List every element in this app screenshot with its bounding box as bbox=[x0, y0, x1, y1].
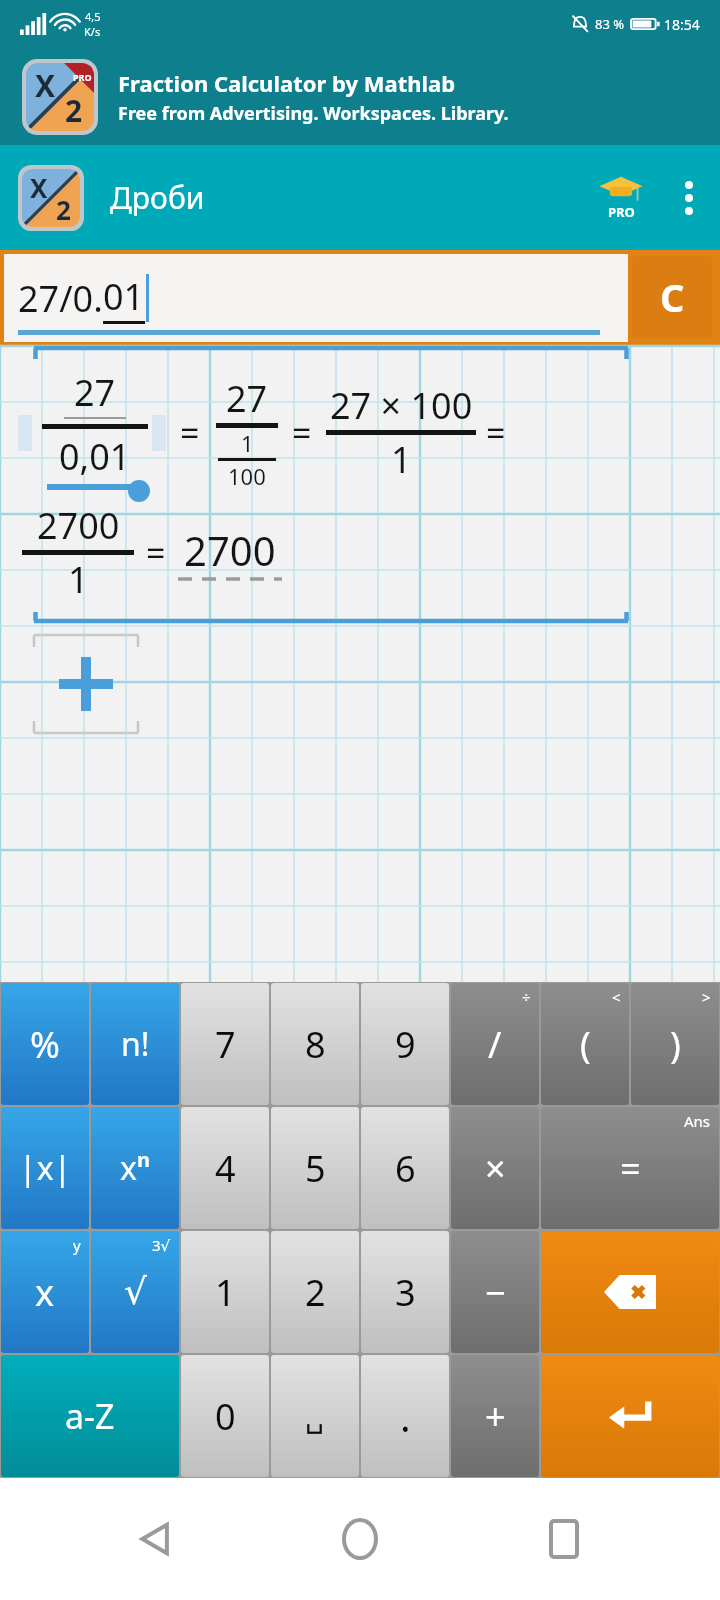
button[interactable]: Home bbox=[312, 1491, 408, 1587]
button[interactable]: 8 bbox=[271, 983, 359, 1105]
staticText: > bbox=[702, 987, 711, 1007]
button[interactable]: PRO bbox=[584, 161, 658, 235]
button[interactable]: More options bbox=[658, 167, 720, 229]
staticText: 2700 bbox=[37, 501, 120, 550]
staticText: 2 bbox=[56, 192, 71, 227]
staticText: / bbox=[488, 1020, 502, 1069]
staticText: K/s bbox=[84, 24, 101, 39]
button[interactable]: Enter bbox=[541, 1355, 719, 1477]
staticText: ) bbox=[670, 1020, 681, 1069]
staticText: 0,01 bbox=[59, 432, 131, 481]
staticText: 6 bbox=[395, 1144, 416, 1193]
button[interactable]: × bbox=[451, 1107, 539, 1229]
button[interactable]: Add bbox=[34, 634, 138, 734]
staticText: 0 bbox=[215, 1392, 236, 1441]
staticText: 2700 bbox=[184, 523, 276, 577]
staticText: 3√ bbox=[152, 1235, 171, 1255]
staticText: = bbox=[486, 410, 506, 456]
button[interactable]: Ans bbox=[541, 1107, 719, 1229]
staticText: 27 bbox=[74, 368, 116, 417]
button[interactable]: Recent apps bbox=[516, 1491, 612, 1587]
button[interactable]: % bbox=[1, 983, 89, 1105]
staticText: 8 bbox=[305, 1020, 326, 1069]
button[interactable]: . bbox=[361, 1355, 449, 1477]
staticText: 1 bbox=[215, 1268, 236, 1317]
staticText: 4 bbox=[215, 1144, 236, 1193]
button[interactable]: > bbox=[631, 983, 719, 1105]
staticText: 01 bbox=[103, 272, 145, 321]
staticText: x bbox=[35, 1268, 55, 1317]
staticText: 83 % bbox=[595, 15, 625, 33]
staticText: 27 bbox=[226, 374, 268, 423]
button[interactable]: 4 bbox=[181, 1107, 269, 1229]
button[interactable]: y bbox=[1, 1231, 89, 1353]
staticText: 2 bbox=[305, 1268, 326, 1317]
button[interactable]: 7 bbox=[181, 983, 269, 1105]
staticText: 1 bbox=[391, 435, 412, 484]
staticText: 1 bbox=[68, 555, 89, 604]
staticText: 9 bbox=[395, 1020, 416, 1069]
button[interactable]: − bbox=[451, 1231, 539, 1353]
staticText: = bbox=[292, 410, 312, 456]
staticText: < bbox=[612, 987, 621, 1007]
staticText: ␣ bbox=[305, 1399, 325, 1434]
button[interactable]: + bbox=[451, 1355, 539, 1477]
staticText: ÷ bbox=[522, 987, 531, 1007]
staticText: X bbox=[30, 170, 48, 205]
staticText: = bbox=[180, 410, 200, 456]
staticText: + bbox=[485, 1392, 506, 1441]
staticText: ( bbox=[580, 1020, 591, 1069]
staticText: × bbox=[485, 1144, 506, 1193]
staticText: Fraction Calculator by Mathlab bbox=[118, 68, 456, 98]
button[interactable]: 27/0. bbox=[4, 254, 628, 342]
staticText: |x| bbox=[19, 1146, 72, 1190]
button[interactable]: App icon bbox=[18, 165, 84, 231]
button[interactable]: Backspace bbox=[541, 1231, 719, 1353]
staticText: X bbox=[35, 65, 56, 106]
staticText: 18:54 bbox=[664, 15, 700, 34]
button[interactable]: n! bbox=[91, 983, 179, 1105]
button[interactable]: 9 bbox=[361, 983, 449, 1105]
button[interactable]: 5 bbox=[271, 1107, 359, 1229]
staticText: PRO bbox=[608, 203, 635, 221]
button[interactable]: 3√ bbox=[91, 1231, 179, 1353]
button[interactable]: < bbox=[541, 983, 629, 1105]
staticText: √ bbox=[124, 1271, 147, 1313]
staticText: 1 bbox=[241, 428, 254, 458]
button[interactable]: |x| bbox=[1, 1107, 89, 1229]
staticText: C bbox=[660, 271, 685, 323]
staticText: = bbox=[146, 530, 166, 576]
staticText: n bbox=[137, 1146, 150, 1173]
button[interactable]: x bbox=[91, 1107, 179, 1229]
button[interactable]: ␣ bbox=[271, 1355, 359, 1477]
button[interactable]: C bbox=[632, 256, 712, 338]
staticText: n! bbox=[121, 1022, 150, 1066]
staticText: 27/0. bbox=[18, 274, 103, 323]
staticText: 7 bbox=[215, 1020, 236, 1069]
staticText: a-Z bbox=[65, 1393, 115, 1439]
button[interactable]: 3 bbox=[361, 1231, 449, 1353]
staticText: y bbox=[73, 1235, 81, 1255]
button[interactable]: 0 bbox=[181, 1355, 269, 1477]
staticText: = bbox=[620, 1144, 641, 1193]
button[interactable]: Back bbox=[108, 1491, 204, 1587]
button[interactable]: 2 bbox=[271, 1231, 359, 1353]
button[interactable]: a-Z bbox=[1, 1355, 179, 1477]
staticText: . bbox=[400, 1389, 411, 1443]
button[interactable]: X bbox=[0, 48, 720, 145]
staticText: 27 × 100 bbox=[330, 381, 473, 430]
button[interactable]: 6 bbox=[361, 1107, 449, 1229]
staticText: 5 bbox=[305, 1144, 326, 1193]
staticText: PRO bbox=[73, 71, 92, 83]
staticText: % bbox=[30, 1020, 60, 1069]
staticText: Ans bbox=[684, 1111, 711, 1131]
staticText: x bbox=[120, 1146, 137, 1190]
button[interactable]: 1 bbox=[181, 1231, 269, 1353]
staticText: 100 bbox=[228, 461, 266, 491]
staticText: 3 bbox=[395, 1268, 416, 1317]
staticText: 2 bbox=[65, 90, 83, 131]
button[interactable]: ÷ bbox=[451, 983, 539, 1105]
staticText: Free from Advertising. Workspaces. Libra… bbox=[118, 101, 509, 126]
staticText: − bbox=[485, 1268, 506, 1317]
staticText: Дроби bbox=[110, 177, 584, 218]
